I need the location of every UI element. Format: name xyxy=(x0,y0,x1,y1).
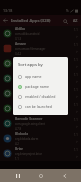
button[interactable]: Amaze xyxy=(0,41,81,56)
staticText: Blokada xyxy=(15,131,29,136)
staticText: 1.1 xyxy=(74,28,78,32)
staticText: Sort apps by xyxy=(18,62,43,68)
staticText: Amaze xyxy=(15,41,26,46)
staticText: > xyxy=(76,50,78,54)
staticText: 4.7.8 xyxy=(15,127,22,131)
button[interactable]: AnkiDroid xyxy=(0,56,81,71)
staticText: AZ xyxy=(73,18,78,23)
button[interactable]: app name xyxy=(18,73,64,80)
staticText: de.danoeh.antennapod xyxy=(15,77,45,81)
button[interactable]: enabled / disabled xyxy=(18,93,64,100)
staticText: 4.2 xyxy=(15,142,19,146)
staticText: org.briarproject.briar xyxy=(15,152,42,156)
staticText: com.aldiko.android xyxy=(15,32,40,36)
staticText: Aldiko xyxy=(15,26,26,31)
button[interactable]: APK Extractor xyxy=(0,101,81,116)
staticText: AntennaPod xyxy=(15,71,36,76)
button[interactable]: Recents xyxy=(11,169,24,182)
staticText: 1.1 xyxy=(74,148,78,152)
button[interactable]: Back xyxy=(58,169,71,182)
staticText: 1.1 xyxy=(74,118,78,122)
staticText: 1.1 xyxy=(74,58,78,62)
button[interactable]: can be launched xyxy=(18,103,64,110)
staticText: 1.2 xyxy=(15,112,19,116)
staticText: enabled / disabled xyxy=(25,94,56,99)
button[interactable]: package name xyxy=(18,83,64,90)
staticText: can be launched xyxy=(25,104,52,109)
staticText: 3.4.2 xyxy=(15,52,22,56)
staticText: AnkiDroid xyxy=(15,56,32,61)
staticText: com.google.zxing.client xyxy=(15,122,45,126)
staticText: 1.1 xyxy=(74,103,78,107)
staticText: 1.1 xyxy=(74,88,78,92)
button[interactable]: Aldiko xyxy=(0,26,81,41)
button[interactable]: Search xyxy=(60,16,70,26)
button[interactable]: Back xyxy=(0,15,11,26)
staticText: 3.1.3 xyxy=(15,37,22,41)
staticText: > xyxy=(76,35,78,39)
staticText: org.blokada.alarm xyxy=(15,137,39,141)
staticText: Briar xyxy=(15,146,23,151)
staticText: com.ghisler.apkextractor xyxy=(15,107,47,111)
staticText: 1.1 xyxy=(74,73,78,77)
button[interactable]: Home xyxy=(34,169,47,182)
staticText: 1.1 xyxy=(15,157,19,161)
button[interactable]: Sort xyxy=(70,15,81,26)
button[interactable]: Blokada xyxy=(0,131,81,146)
staticText: com.amaze.filemanager xyxy=(15,47,46,51)
button[interactable]: Barcode Scanner xyxy=(0,116,81,131)
staticText: AnySoftKeyboard xyxy=(15,86,43,91)
staticText: > xyxy=(76,155,78,159)
staticText: % xyxy=(66,9,69,13)
button[interactable]: AntennaPod xyxy=(0,71,81,86)
staticText: Installed Apps (328) xyxy=(11,18,60,24)
staticText: 1.1 xyxy=(74,133,78,137)
staticText: app name xyxy=(25,74,42,79)
staticText: > xyxy=(76,65,78,69)
staticText: > xyxy=(76,110,78,114)
staticText: > xyxy=(76,95,78,99)
staticText: APK Extractor xyxy=(15,101,38,106)
staticText: > xyxy=(76,80,78,84)
staticText: 1.7.2 xyxy=(15,82,22,86)
staticText: com.menny.android.anysoftkeyboard xyxy=(15,92,63,96)
staticText: > xyxy=(76,125,78,129)
staticText: Barcode Scanner xyxy=(15,116,43,121)
button[interactable]: Briar xyxy=(0,146,81,161)
staticText: 13:18 xyxy=(3,8,13,13)
staticText: 1.9 xyxy=(15,97,19,101)
staticText: package name xyxy=(25,84,50,89)
staticText: com.ichi2.anki xyxy=(15,62,34,66)
staticText: 1.1 xyxy=(74,43,78,47)
staticText: > xyxy=(76,140,78,144)
button[interactable]: AnySoftKeyboard xyxy=(0,86,81,101)
